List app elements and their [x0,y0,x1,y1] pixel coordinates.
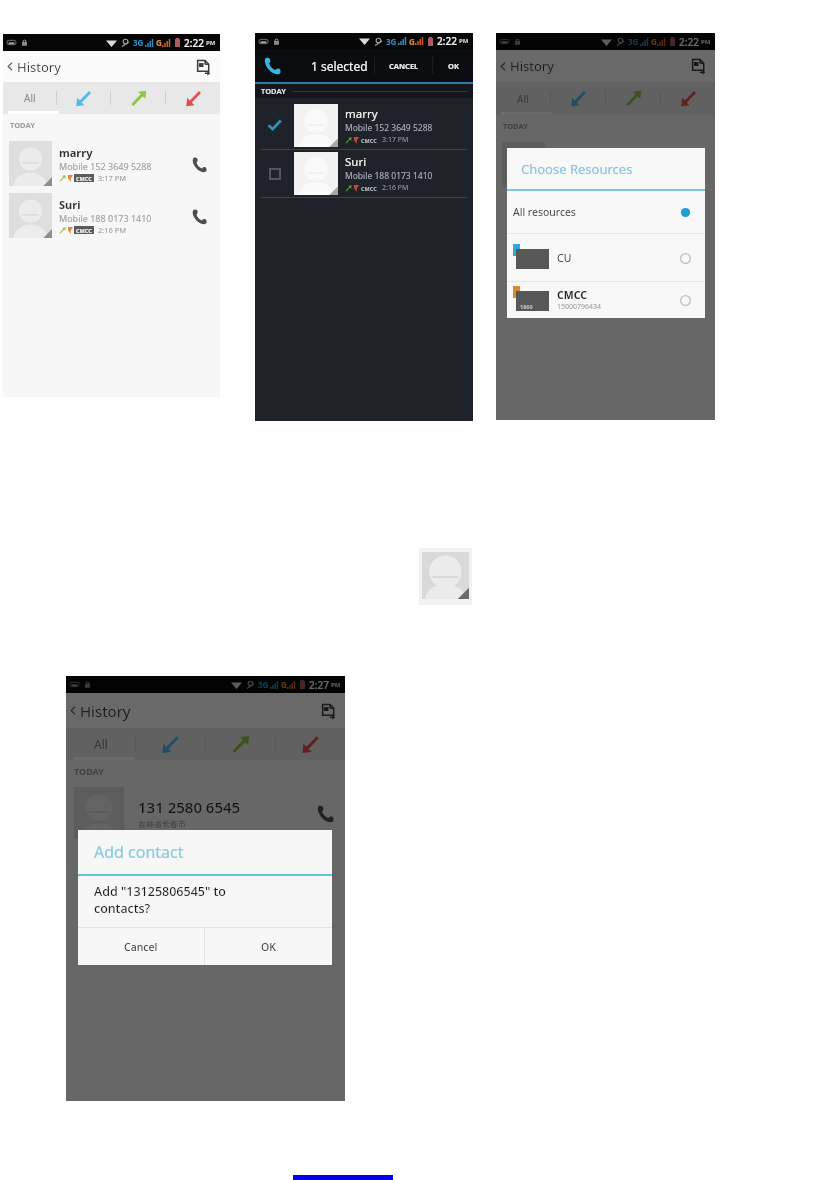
staticText: All [517,92,529,106]
button[interactable]: Back [3,51,220,82]
button[interactable]: OK [433,49,473,82]
staticText: 吉林省长春市 [138,819,186,829]
staticText: All resources [513,205,576,219]
staticText: Add contact [94,841,184,863]
staticText: Mobile 152 3649 5288 [552,161,645,173]
button[interactable]: Suri [3,193,220,238]
button[interactable]: Back [66,693,345,728]
staticText: History [17,58,61,76]
staticText: 15000796434 [557,302,602,312]
button[interactable]: Incoming calls [551,82,605,115]
button[interactable]: CANCEL [375,49,432,82]
staticText: TODAY [10,120,35,130]
staticText: Choose Resources [521,160,633,178]
button[interactable]: CU [507,234,705,281]
staticText: Suri [345,154,367,170]
staticText: TODAY [261,86,286,96]
button[interactable]: Select Suri [255,150,473,197]
staticText: CU [557,251,572,265]
staticText: All [94,736,108,752]
staticText: G [281,679,287,690]
button[interactable]: All [3,82,56,114]
button[interactable]: Missed calls [661,82,715,115]
staticText: PM [701,38,711,46]
staticText: Mobile 188 0173 1410 [59,212,152,224]
button[interactable]: New note [687,55,709,77]
button[interactable]: Incoming calls [136,728,205,760]
button[interactable]: marry [3,141,220,186]
staticText: 3G [628,36,639,47]
button[interactable]: Call [308,796,342,830]
button[interactable]: New note [192,56,214,78]
button[interactable]: Incoming calls [57,82,110,114]
button[interactable]: OK [205,928,332,965]
staticText: TODAY [74,765,104,777]
staticText: Mobile 152 3649 5288 [59,160,152,172]
button[interactable]: Call [183,148,215,180]
button[interactable]: Outgoing calls [111,82,165,114]
button[interactable]: Call [678,149,710,181]
staticText: Mobile 152 3649 5288 [345,122,433,134]
staticText: 2:27 [309,678,329,692]
button[interactable]: Outgoing calls [606,82,660,115]
staticText: All [24,91,36,105]
button[interactable]: Cancel [78,928,204,965]
button[interactable]: All resources [507,191,705,233]
button[interactable]: Select Suri [255,150,294,197]
button[interactable]: Missed calls [166,82,220,114]
staticText: G [156,37,162,48]
staticText: CMCC [361,185,377,192]
staticText: marry [59,145,93,160]
staticText: 2:22 [184,36,204,50]
staticText: Mobile 188 0173 1410 [345,170,433,182]
staticText: 131 2580 6545 [138,797,241,817]
staticText: PM [206,39,216,47]
button[interactable]: All [66,728,135,760]
staticText: CMCC [76,227,92,234]
button[interactable]: Select CMCC [672,287,698,313]
staticText: PM [331,681,341,689]
staticText: marry [345,106,378,122]
button[interactable]: marry [496,142,715,187]
staticText: 3:17 PM [382,135,409,145]
button[interactable]: Select CU [672,245,698,271]
staticText: History [80,701,131,721]
other: Back [70,705,76,716]
button[interactable]: 1860 [507,282,705,318]
staticText: TODAY [503,121,528,131]
staticText: 3G [386,36,397,47]
button[interactable]: Back [496,50,715,82]
staticText: G [651,36,657,47]
button[interactable]: 131 2580 6545 [66,786,345,840]
button[interactable]: Select All resources [672,199,698,225]
staticText: 3G [133,37,144,48]
button[interactable]: New note [317,700,339,722]
staticText: CMCC [76,175,92,182]
staticText: Cancel [124,940,158,954]
staticText: marry [552,146,586,161]
button[interactable]: Outgoing calls [206,728,275,760]
other: Back [500,61,506,72]
staticText: CANCEL [389,61,419,71]
button[interactable]: Call [183,200,215,232]
staticText: 3G [258,679,269,690]
staticText: PM [459,37,469,45]
staticText: Suri [59,197,81,212]
button[interactable]: Dialer [255,49,289,82]
staticText: CMCC [557,288,587,302]
staticText: History [510,57,554,75]
staticText: 1 selected [311,58,368,74]
staticText: CMCC [361,137,377,144]
staticText: OK [448,61,459,71]
other: Back [7,61,13,72]
button[interactable]: All [496,82,550,115]
staticText: Add "13125806545" to contacts? [94,883,226,917]
staticText: 2:22 [679,35,699,49]
staticText: 3:17 PM [98,173,127,183]
button[interactable]: Select marry [255,102,294,149]
button[interactable]: Missed calls [276,728,345,760]
button[interactable]: Select marry [255,102,473,149]
staticText: 2:16 PM [382,183,409,193]
